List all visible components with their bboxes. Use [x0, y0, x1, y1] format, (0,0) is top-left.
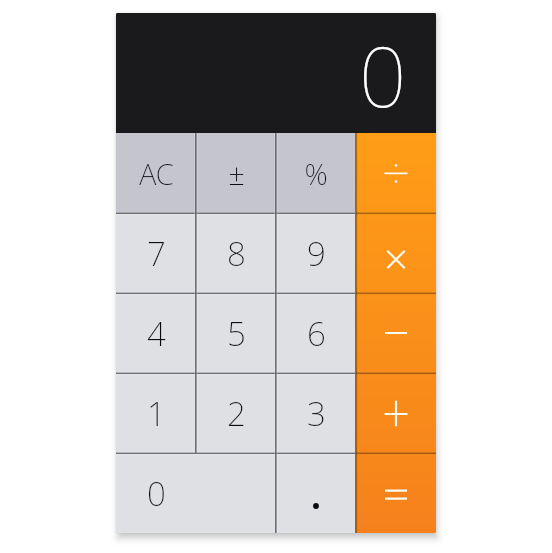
- button[interactable]: 2: [196, 373, 276, 453]
- staticText: 1: [147, 391, 166, 436]
- button[interactable]: Subtract: [356, 293, 436, 373]
- button[interactable]: 0: [116, 453, 276, 533]
- button[interactable]: ±: [196, 133, 276, 213]
- button[interactable]: Divide: [356, 133, 436, 213]
- button[interactable]: 1: [116, 373, 196, 453]
- button[interactable]: 8: [196, 213, 276, 293]
- button[interactable]: 3: [276, 373, 356, 453]
- staticText: 3: [307, 391, 326, 436]
- button[interactable]: Add: [356, 373, 436, 453]
- button[interactable]: Decimal point: [276, 453, 356, 533]
- staticText: 6: [307, 311, 326, 356]
- staticText: 4: [147, 311, 166, 356]
- staticText: 5: [227, 311, 246, 356]
- staticText: 0: [147, 471, 166, 516]
- staticText: 8: [227, 231, 246, 276]
- button[interactable]: Equals: [356, 453, 436, 533]
- staticText: 7: [147, 231, 166, 276]
- button[interactable]: 4: [116, 293, 196, 373]
- button[interactable]: 6: [276, 293, 356, 373]
- staticText: ±: [228, 154, 245, 193]
- button[interactable]: 7: [116, 213, 196, 293]
- button[interactable]: %: [276, 133, 356, 213]
- button[interactable]: AC: [116, 133, 196, 213]
- button[interactable]: 5: [196, 293, 276, 373]
- button[interactable]: 9: [276, 213, 356, 293]
- staticText: AC: [139, 154, 174, 193]
- staticText: 0: [359, 18, 407, 131]
- staticText: 2: [227, 391, 246, 436]
- button[interactable]: Multiply: [356, 213, 436, 293]
- staticText: 9: [307, 231, 326, 276]
- staticText: %: [304, 154, 328, 193]
